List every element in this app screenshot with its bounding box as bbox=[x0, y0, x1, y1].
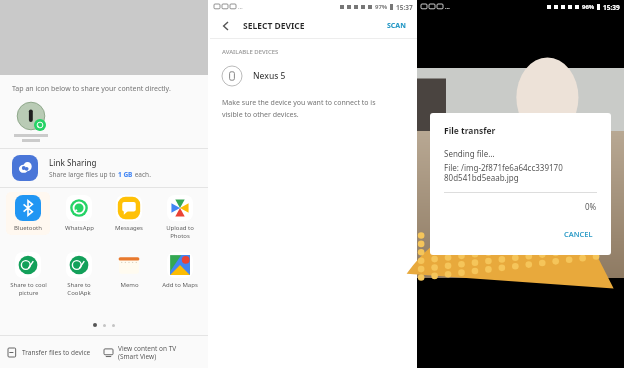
button[interactable]: Upload to Photos bbox=[158, 192, 202, 243]
button[interactable]: CANCEL bbox=[560, 225, 597, 243]
staticText: each. bbox=[133, 170, 151, 179]
button[interactable]: Nexus 5 bbox=[210, 62, 417, 90]
staticText: AVAILABLE DEVICES bbox=[222, 48, 279, 56]
button[interactable]: SCAN bbox=[384, 18, 409, 34]
staticText: 97% bbox=[375, 3, 388, 11]
button[interactable]: View content on TV (Smart View) bbox=[104, 336, 208, 368]
staticText: Add to Maps bbox=[162, 281, 198, 289]
staticText: Transfer files to device bbox=[22, 348, 91, 357]
button[interactable]: Share to cool picture bbox=[6, 249, 50, 300]
staticText: Bluetooth bbox=[14, 224, 42, 232]
staticText: Share to cool picture bbox=[10, 281, 47, 297]
staticText: Make sure the device you want to connect… bbox=[222, 98, 376, 119]
staticText: Upload to Photos bbox=[166, 224, 194, 240]
button[interactable]: Add to Maps bbox=[158, 249, 202, 292]
staticText: Share to CoolApk bbox=[67, 281, 91, 297]
staticText: Messages bbox=[115, 224, 143, 232]
staticText: File: /img-2f871fe6a64cc339170 80d541bd5… bbox=[444, 162, 563, 183]
button[interactable]: Link Sharing bbox=[0, 149, 208, 187]
button[interactable] bbox=[10, 101, 52, 142]
staticText: 96% bbox=[582, 3, 595, 11]
staticText: SELECT DEVICE bbox=[243, 20, 305, 32]
staticText: Nexus 5 bbox=[253, 70, 286, 82]
staticText: Tap an icon below to share your content … bbox=[12, 84, 171, 94]
button[interactable]: Memo bbox=[107, 249, 151, 292]
staticText: SCAN bbox=[387, 21, 406, 31]
staticText: Sending file… bbox=[444, 148, 495, 159]
button[interactable]: WhatsApp bbox=[57, 192, 101, 235]
button[interactable]: Messages bbox=[107, 192, 151, 235]
staticText: … bbox=[238, 3, 243, 11]
staticText: File transfer bbox=[444, 125, 496, 137]
staticText: CANCEL bbox=[564, 229, 593, 239]
button[interactable]: Share to CoolApk bbox=[57, 249, 101, 300]
staticText: … bbox=[445, 3, 450, 11]
staticText: Share large files up to bbox=[49, 170, 118, 179]
button[interactable]: Transfer files to device bbox=[0, 336, 104, 368]
staticText: View content on TV (Smart View) bbox=[118, 344, 177, 361]
staticText: 0% bbox=[585, 201, 597, 212]
button[interactable]: Bluetooth bbox=[6, 192, 50, 235]
staticText: Memo bbox=[120, 281, 139, 289]
staticText: 15:37 bbox=[396, 3, 413, 12]
staticText: 15:39 bbox=[603, 3, 620, 12]
button[interactable]: Back bbox=[218, 18, 234, 34]
staticText: 1 GB bbox=[118, 170, 133, 179]
staticText: WhatsApp bbox=[65, 224, 94, 232]
staticText: Link Sharing bbox=[49, 157, 97, 168]
